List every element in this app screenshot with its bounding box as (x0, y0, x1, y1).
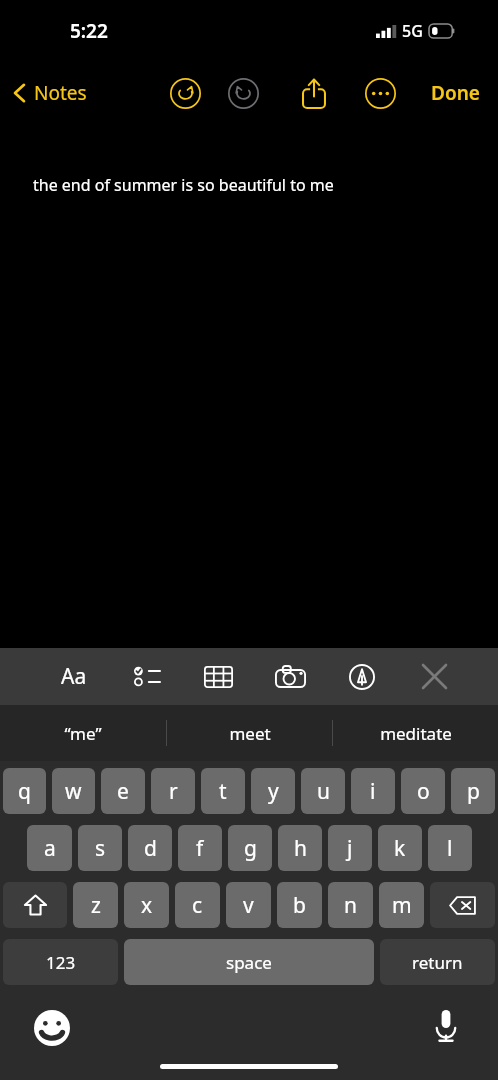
button[interactable]: space (124, 939, 374, 985)
button[interactable]: Done (423, 72, 488, 114)
staticText: 123 (46, 951, 76, 974)
button[interactable]: f (178, 825, 222, 871)
button[interactable]: g (228, 825, 272, 871)
button[interactable]: y (251, 768, 295, 814)
staticText: meet (229, 722, 271, 745)
button[interactable]: e (101, 768, 145, 814)
button[interactable]: n (328, 882, 373, 928)
button[interactable]: t (201, 768, 245, 814)
button[interactable]: Markup (326, 648, 398, 705)
button[interactable]: u (301, 768, 345, 814)
staticText: u (317, 777, 330, 806)
staticText: Notes (34, 80, 87, 106)
button[interactable]: Text format (38, 648, 110, 705)
staticText: b (293, 891, 306, 920)
button[interactable]: z (73, 882, 118, 928)
staticText: x (141, 891, 153, 920)
button[interactable]: m (379, 882, 424, 928)
staticText: space (226, 951, 272, 974)
staticText: the end of summer is so beautiful to me (33, 174, 334, 196)
button[interactable]: Dictation (425, 1005, 467, 1047)
button[interactable]: k (378, 825, 422, 871)
button[interactable]: d (128, 825, 172, 871)
staticText: i (370, 777, 376, 806)
button[interactable]: q (3, 768, 46, 814)
staticText: v (243, 891, 254, 920)
button[interactable]: b (277, 882, 322, 928)
staticText: r (169, 777, 178, 806)
staticText: “me” (64, 722, 102, 745)
button[interactable]: Undo (162, 70, 208, 116)
staticText: l (447, 834, 453, 863)
button[interactable]: Notes (8, 74, 91, 112)
button[interactable]: Close keyboard (398, 648, 470, 705)
button[interactable]: Redo (220, 70, 266, 116)
staticText: z (91, 891, 101, 920)
staticText: m (392, 891, 412, 920)
button[interactable]: o (401, 768, 445, 814)
staticText: q (18, 777, 31, 806)
button[interactable]: meditate (333, 705, 498, 761)
button[interactable]: w (52, 768, 95, 814)
button[interactable]: r (151, 768, 195, 814)
button[interactable]: Table (182, 648, 254, 705)
button[interactable]: p (451, 768, 495, 814)
staticText: d (144, 834, 157, 863)
button[interactable]: a (27, 825, 72, 871)
button[interactable]: meet (167, 705, 332, 761)
staticText: w (65, 777, 82, 806)
staticText: Aa (61, 662, 87, 691)
button[interactable]: s (78, 825, 122, 871)
staticText: j (347, 834, 353, 863)
staticText: h (294, 834, 307, 863)
staticText: return (412, 951, 463, 974)
button[interactable]: Emoji (31, 1007, 73, 1049)
staticText: y (268, 777, 279, 806)
button[interactable]: return (380, 939, 495, 985)
button[interactable]: Backspace (430, 882, 495, 928)
staticText: t (219, 777, 227, 806)
staticText: k (394, 834, 406, 863)
staticText: meditate (380, 722, 452, 745)
button[interactable]: “me” (0, 705, 166, 761)
staticText: 5G (402, 20, 423, 42)
button[interactable]: i (351, 768, 395, 814)
button[interactable]: 123 (3, 939, 118, 985)
staticText: Done (431, 80, 480, 106)
staticText: 5:22 (70, 18, 108, 44)
button[interactable]: Share (291, 70, 337, 116)
button[interactable]: Camera (254, 648, 326, 705)
staticText: n (344, 891, 357, 920)
button[interactable]: h (278, 825, 322, 871)
staticText: f (196, 834, 204, 863)
button[interactable]: v (226, 882, 271, 928)
staticText: p (467, 777, 480, 806)
staticText: s (95, 834, 106, 863)
staticText: g (244, 834, 257, 863)
button[interactable]: More options (357, 70, 403, 116)
button[interactable]: j (328, 825, 372, 871)
button[interactable]: x (124, 882, 169, 928)
staticText: o (417, 777, 430, 806)
button[interactable]: Checklist (110, 648, 182, 705)
button[interactable]: c (175, 882, 220, 928)
staticText: a (44, 834, 56, 863)
button[interactable]: l (428, 825, 472, 871)
staticText: c (192, 891, 203, 920)
button[interactable]: Shift (3, 882, 67, 928)
staticText: e (117, 777, 129, 806)
